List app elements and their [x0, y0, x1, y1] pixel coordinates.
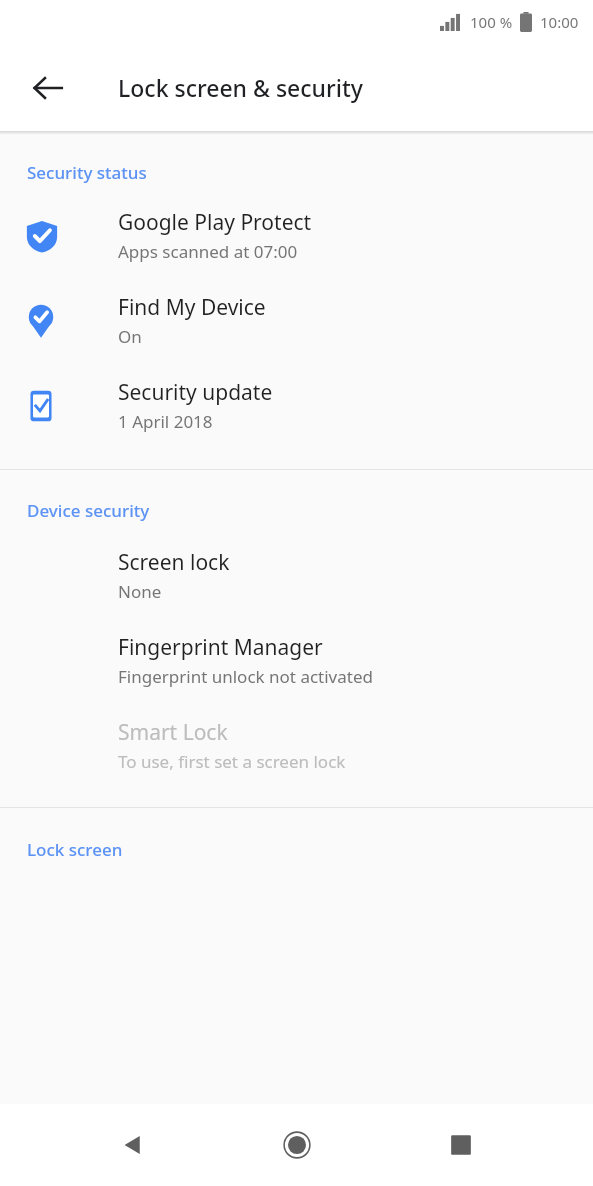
staticText: 1 April 2018: [118, 410, 213, 433]
button[interactable]: Smart Lock: [0, 704, 593, 789]
button[interactable]: Fingerprint Manager: [0, 619, 593, 704]
staticText: To use, first set a screen lock: [118, 750, 346, 773]
staticText: Smart Lock: [118, 718, 228, 747]
staticText: Security update: [118, 378, 273, 407]
staticText: Security status: [27, 161, 147, 184]
button[interactable]: Back: [24, 64, 72, 112]
button[interactable]: Find My Device: [0, 279, 593, 364]
staticText: 100 %: [470, 12, 513, 32]
staticText: On: [118, 325, 142, 348]
button[interactable]: Recent apps: [437, 1121, 485, 1169]
staticText: 10:00: [540, 12, 579, 32]
button[interactable]: Home: [273, 1121, 321, 1169]
staticText: Fingerprint unlock not activated: [118, 665, 373, 688]
staticText: Device security: [27, 499, 150, 522]
staticText: Lock screen: [27, 838, 123, 861]
staticText: Apps scanned at 07:00: [118, 240, 298, 263]
button[interactable]: Google Play Protect: [0, 194, 593, 279]
staticText: Fingerprint Manager: [118, 633, 323, 662]
staticText: Lock screen & security: [118, 72, 363, 103]
button[interactable]: Back: [109, 1121, 157, 1169]
button[interactable]: Screen lock: [0, 534, 593, 619]
button[interactable]: Security update: [0, 364, 593, 449]
staticText: Find My Device: [118, 293, 266, 322]
staticText: None: [118, 580, 162, 603]
staticText: Google Play Protect: [118, 208, 312, 237]
staticText: Screen lock: [118, 548, 230, 577]
